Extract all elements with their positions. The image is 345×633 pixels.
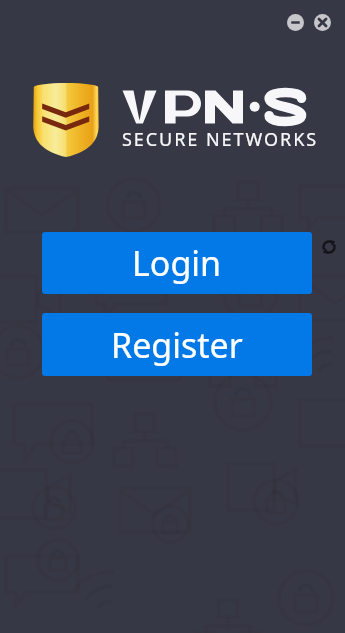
button[interactable]: Login: [42, 232, 312, 294]
button[interactable]: Register: [42, 313, 312, 376]
button[interactable]: Minimize: [287, 14, 304, 31]
staticText: Register: [111, 322, 243, 368]
staticText: Login: [132, 240, 222, 286]
staticText: SECURE NETWORKS: [122, 127, 319, 152]
button[interactable]: Refresh: [319, 237, 338, 256]
button[interactable]: Close: [314, 14, 331, 31]
